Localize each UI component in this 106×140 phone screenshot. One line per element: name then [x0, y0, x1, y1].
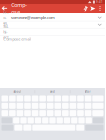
staticText: Compose: [11, 1, 27, 16]
staticText: about: [13, 90, 21, 93]
staticText: Compose email: [3, 36, 31, 42]
button[interactable]: Subject: [0, 28, 105, 35]
staticText: 9:41: [96, 0, 103, 4]
staticText: To: [3, 22, 7, 27]
button[interactable]: Send: [89, 4, 96, 13]
staticText: Subject: [3, 24, 8, 40]
staticText: From: [3, 9, 8, 25]
button[interactable]: Compose email: [0, 35, 105, 42]
staticText: someone@example.com: [11, 15, 55, 20]
button[interactable]: More options: [96, 4, 103, 13]
staticText: after: [85, 90, 91, 93]
staticText: and: [50, 90, 55, 93]
button[interactable]: To: [0, 21, 105, 28]
button[interactable]: From: [0, 14, 105, 21]
button[interactable]: Attach file: [81, 4, 89, 13]
button[interactable]: Back: [0, 4, 9, 13]
